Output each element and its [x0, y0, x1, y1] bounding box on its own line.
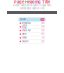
- staticText: Breakfast: [22, 22, 31, 24]
- staticText: a short descriptive subtitle goes here: [13, 4, 51, 7]
- staticText: Section: [20, 18, 26, 21]
- staticText: second grey caption line: [20, 7, 44, 10]
- staticText: 610: [41, 33, 44, 35]
- staticText: 320: [41, 22, 44, 24]
- staticText: Dessert: [22, 40, 29, 43]
- staticText: 210: [41, 40, 44, 43]
- staticText: Page Heading Title: [14, 0, 50, 4]
- staticText: Snack bar: [22, 29, 31, 32]
- staticText: 540: [41, 26, 44, 28]
- staticText: Lunch meal: [22, 25, 27, 29]
- staticText: 150: [41, 29, 44, 32]
- staticText: Drinks: [22, 37, 27, 39]
- staticText: Dinner: [22, 33, 27, 35]
- staticText: Add: [41, 18, 44, 21]
- staticText: 90: [42, 37, 44, 39]
